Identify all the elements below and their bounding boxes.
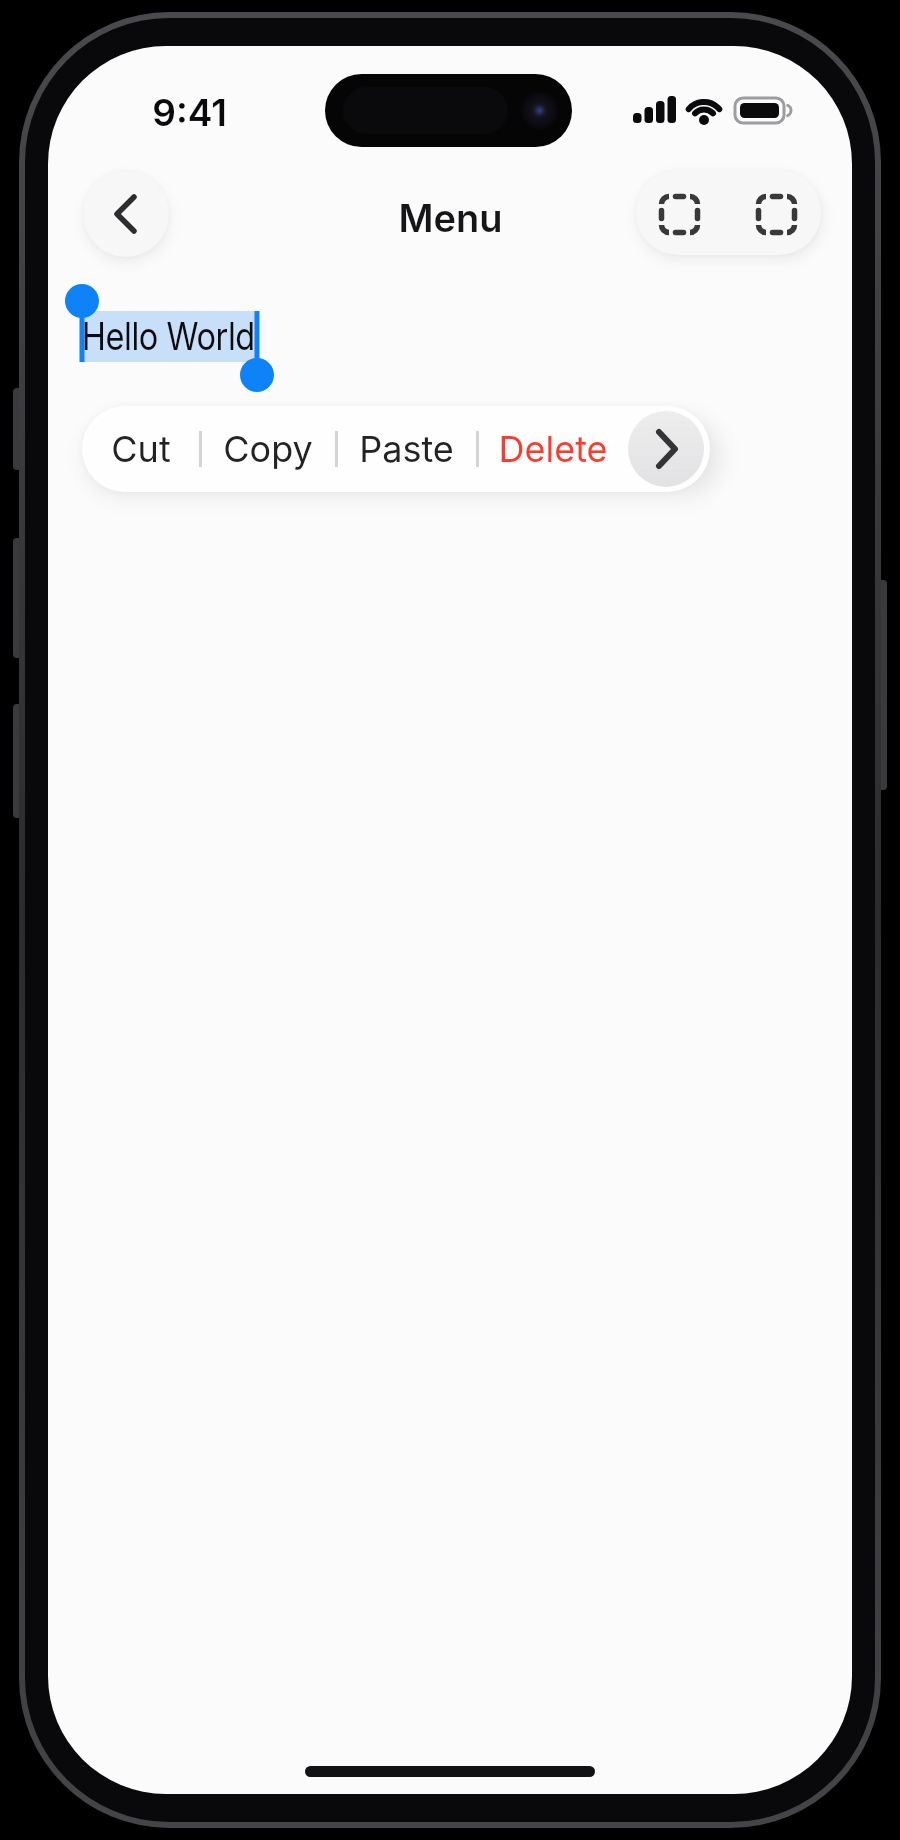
staticText: 9:41 — [152, 90, 227, 135]
button[interactable]: Delete — [477, 406, 628, 492]
staticText: Hello World — [82, 313, 255, 359]
button[interactable] — [83, 171, 169, 257]
staticText: Delete — [498, 427, 608, 471]
button[interactable] — [658, 193, 701, 236]
button[interactable]: Cut — [82, 406, 200, 492]
button[interactable] — [628, 411, 704, 487]
staticText: Cut — [111, 427, 171, 471]
button[interactable]: Paste — [336, 406, 477, 492]
button[interactable] — [755, 193, 798, 236]
button[interactable]: Copy — [200, 406, 336, 492]
staticText: Menu — [398, 195, 503, 241]
staticText: Copy — [223, 427, 313, 471]
staticText: Paste — [359, 427, 454, 471]
